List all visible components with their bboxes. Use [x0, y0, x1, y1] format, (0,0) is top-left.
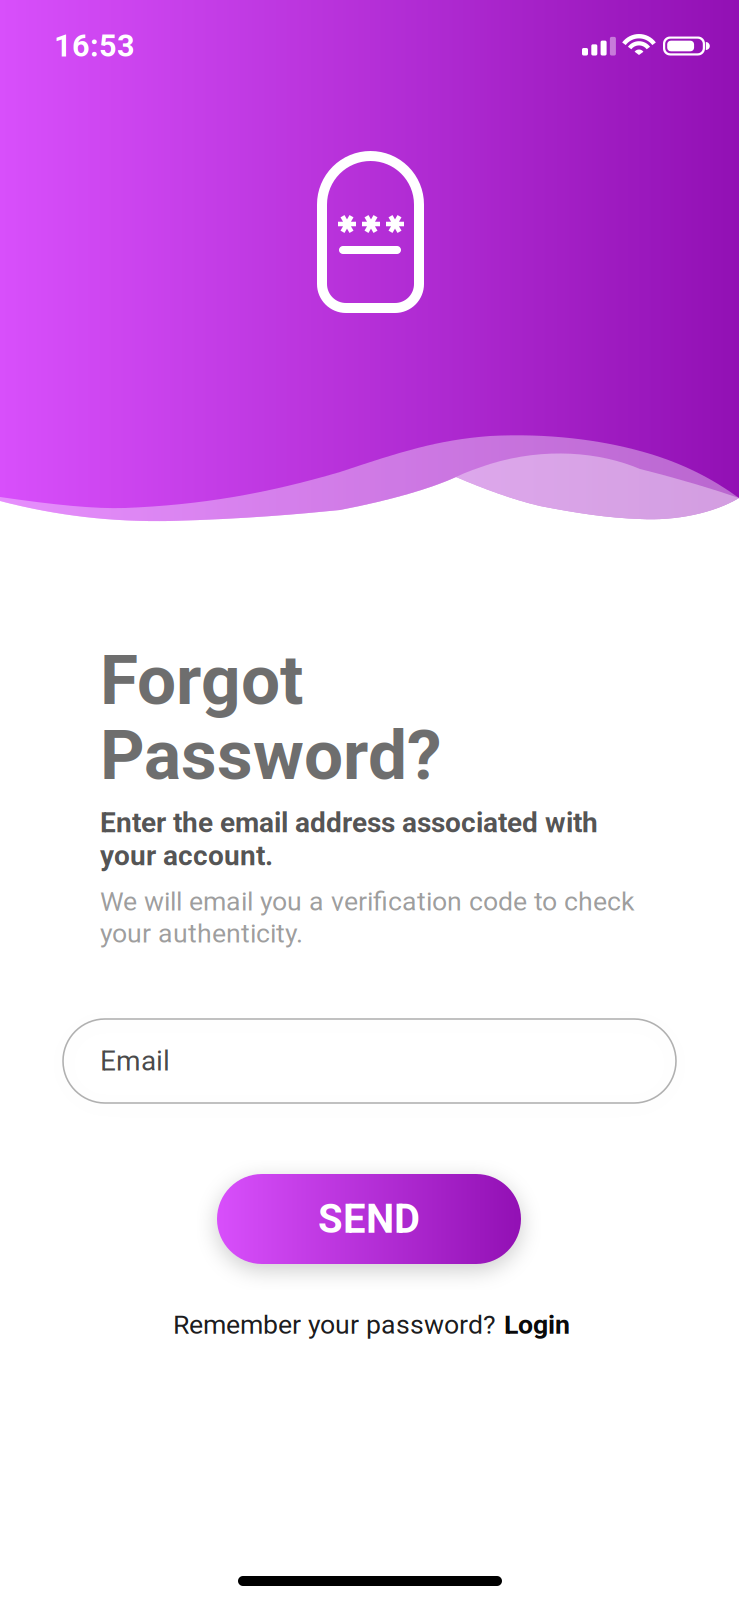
- staticText: your account.: [100, 839, 273, 872]
- staticText: We will email you a verification code to…: [100, 886, 635, 917]
- staticText: Enter the email address associated with: [100, 806, 598, 839]
- staticText: Password?: [100, 715, 441, 796]
- staticText: Email: [100, 1045, 170, 1077]
- staticText: your authenticity.: [100, 918, 303, 949]
- staticText: Remember your password?: [173, 1309, 496, 1340]
- staticText: Forgot: [100, 640, 303, 721]
- button[interactable]: SEND: [217, 1174, 521, 1264]
- staticText: SEND: [318, 1196, 420, 1242]
- staticText: Login: [504, 1309, 570, 1340]
- button[interactable]: Remember your password?: [173, 1309, 570, 1340]
- staticText: 16:53: [54, 28, 135, 64]
